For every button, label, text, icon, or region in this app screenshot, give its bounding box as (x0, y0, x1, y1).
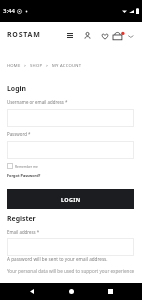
staticText: Login (7, 84, 27, 93)
button[interactable] (7, 238, 134, 256)
staticText: > (43, 63, 52, 69)
button[interactable] (7, 141, 134, 159)
button[interactable]: Back (23, 283, 40, 300)
button[interactable]: LOGIN (7, 189, 134, 209)
staticText: > (21, 63, 30, 69)
button[interactable]: Menu (61, 25, 78, 45)
staticText: 3:44 (3, 7, 15, 15)
button[interactable]: ROSTAM (7, 30, 41, 40)
button[interactable]: Home (63, 283, 80, 300)
button[interactable]: HOME (7, 63, 21, 69)
button[interactable]: Account (79, 25, 96, 45)
button[interactable]: MY ACCOUNT (52, 63, 82, 69)
staticText: Email address * (7, 229, 40, 235)
staticText: Your personal data will be used to suppo… (7, 268, 135, 274)
button[interactable]: Recents (102, 283, 119, 300)
button[interactable]: SHOP (30, 63, 43, 69)
button[interactable]: Cart (113, 25, 137, 45)
button[interactable]: Remember me (7, 163, 38, 169)
staticText: Remember me (15, 164, 38, 168)
button[interactable]: Forgot Password? (7, 173, 41, 178)
button[interactable]: Wishlist (96, 26, 113, 46)
staticText: Username or email address * (7, 99, 68, 105)
staticText: A password will be sent to your email ad… (7, 256, 108, 262)
staticText: LOGIN (61, 196, 81, 203)
button[interactable] (7, 109, 134, 127)
staticText: Register (7, 214, 36, 223)
staticText: Password * (7, 131, 31, 137)
